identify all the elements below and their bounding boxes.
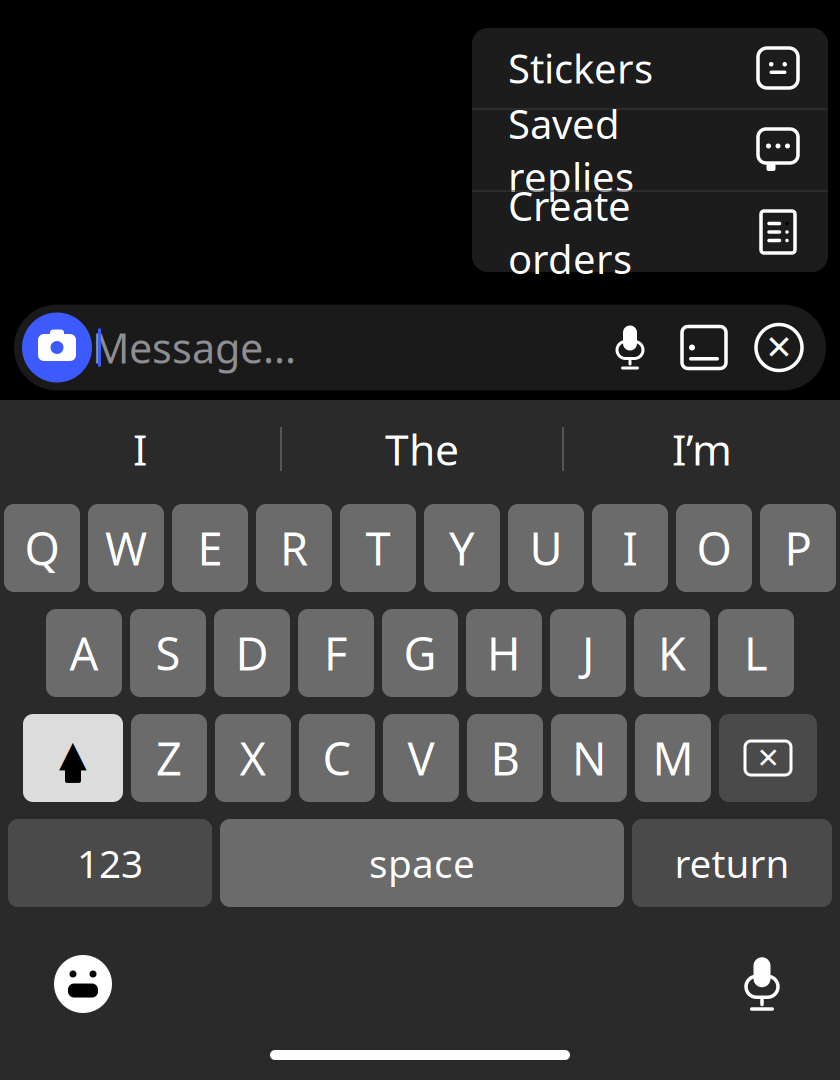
button[interactable]: I xyxy=(592,504,668,592)
button[interactable]: J xyxy=(550,609,626,697)
staticText: V xyxy=(407,728,434,788)
staticText: 123 xyxy=(77,837,143,889)
staticText: L xyxy=(744,623,768,683)
staticText: J xyxy=(582,623,594,683)
staticText: S xyxy=(155,623,180,683)
staticText: G xyxy=(403,623,436,683)
staticText: R xyxy=(280,518,308,578)
button[interactable]: Saved replies xyxy=(472,109,828,190)
staticText: I xyxy=(133,421,147,477)
staticText: O xyxy=(696,518,731,578)
button[interactable]: X xyxy=(215,714,291,802)
staticText: C xyxy=(322,728,351,788)
button[interactable]: Create orders xyxy=(472,191,828,272)
button[interactable]: S xyxy=(130,609,206,697)
staticText: The xyxy=(385,421,459,477)
staticText: X xyxy=(239,728,266,788)
staticText: ▲ xyxy=(59,733,87,774)
button[interactable]: P xyxy=(760,504,836,592)
button[interactable]: T xyxy=(340,504,416,592)
button[interactable]: B xyxy=(467,714,543,802)
staticText: I’m xyxy=(672,421,732,477)
button[interactable]: V xyxy=(383,714,459,802)
staticText: T xyxy=(365,518,390,578)
button[interactable]: E xyxy=(172,504,248,592)
staticText: space xyxy=(369,837,475,889)
button[interactable]: N xyxy=(551,714,627,802)
staticText: Saved replies xyxy=(508,97,634,203)
button[interactable]: Stickers xyxy=(472,27,828,108)
staticText: F xyxy=(324,623,348,683)
button[interactable]: I’m xyxy=(564,400,840,498)
button[interactable]: Close xyxy=(754,322,804,372)
button[interactable]: C xyxy=(299,714,375,802)
button[interactable]: Shift xyxy=(23,714,123,802)
button[interactable]: K xyxy=(634,609,710,697)
button[interactable]: R xyxy=(256,504,332,592)
button[interactable]: Camera xyxy=(22,312,92,382)
staticText: E xyxy=(197,518,222,578)
staticText: B xyxy=(490,728,519,788)
staticText: K xyxy=(658,623,686,683)
button[interactable]: Emoji xyxy=(52,953,114,1015)
button[interactable]: 123 xyxy=(8,819,212,907)
staticText: return xyxy=(674,837,789,889)
staticText: D xyxy=(235,623,268,683)
button[interactable]: return xyxy=(632,819,832,907)
staticText: A xyxy=(69,623,98,683)
button[interactable]: D xyxy=(214,609,290,697)
button[interactable]: space xyxy=(220,819,624,907)
button[interactable]: Delete xyxy=(719,714,817,802)
button[interactable]: L xyxy=(718,609,794,697)
button[interactable]: M xyxy=(635,714,711,802)
staticText: Z xyxy=(156,728,182,788)
button[interactable]: H xyxy=(466,609,542,697)
button[interactable]: Dictation xyxy=(736,951,788,1017)
staticText: P xyxy=(784,518,811,578)
button[interactable]: Voice message xyxy=(608,320,652,374)
button[interactable]: F xyxy=(298,609,374,697)
staticText: ✕ xyxy=(765,329,793,366)
staticText: M xyxy=(652,728,693,788)
button[interactable]: Q xyxy=(4,504,80,592)
staticText: Message... xyxy=(92,320,296,375)
staticText: Q xyxy=(24,518,59,578)
button[interactable]: Photos xyxy=(680,323,728,371)
staticText: W xyxy=(105,518,147,578)
button[interactable]: W xyxy=(88,504,164,592)
staticText: I xyxy=(622,518,637,578)
staticText: ✕ xyxy=(756,742,779,774)
staticText: Y xyxy=(449,518,475,578)
staticText: H xyxy=(487,623,521,683)
button[interactable]: Y xyxy=(424,504,500,592)
button[interactable]: O xyxy=(676,504,752,592)
staticText: U xyxy=(529,518,562,578)
button[interactable]: G xyxy=(382,609,458,697)
button[interactable]: I xyxy=(0,400,280,498)
staticText: Stickers xyxy=(508,41,653,94)
button[interactable]: The xyxy=(282,400,562,498)
button[interactable]: A xyxy=(46,609,122,697)
staticText: N xyxy=(572,728,606,788)
staticText: Create orders xyxy=(508,179,632,285)
button[interactable]: U xyxy=(508,504,584,592)
button[interactable]: Z xyxy=(131,714,207,802)
